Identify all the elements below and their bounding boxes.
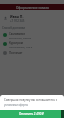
staticText: условиями оферты (4, 103, 29, 107)
button[interactable]: Самовывоз (0, 31, 64, 39)
button[interactable]: Курьером (0, 40, 64, 48)
button[interactable]: Постамат (0, 49, 64, 57)
staticText: Курьером (9, 41, 23, 45)
staticText: +7 912 345 (10, 19, 25, 22)
staticText: Постамат (9, 51, 23, 55)
staticText: Иван П. (10, 14, 24, 19)
staticText: Совершая покупку вы соглашаетесь с (4, 98, 58, 102)
staticText: Оформление заказа (16, 5, 49, 9)
button[interactable]: Иван П. (0, 14, 64, 22)
button[interactable]: Оплатить 2 490 ₽ (0, 110, 64, 118)
staticText: Самовывоз (9, 32, 25, 36)
staticText: Бесплатно, завтра (9, 36, 32, 39)
staticText: Оплатить 2 490 ₽ (19, 112, 45, 116)
staticText: Способ доставки (2, 26, 25, 30)
staticText: Послезавтра, 199 ₽ (9, 45, 33, 48)
